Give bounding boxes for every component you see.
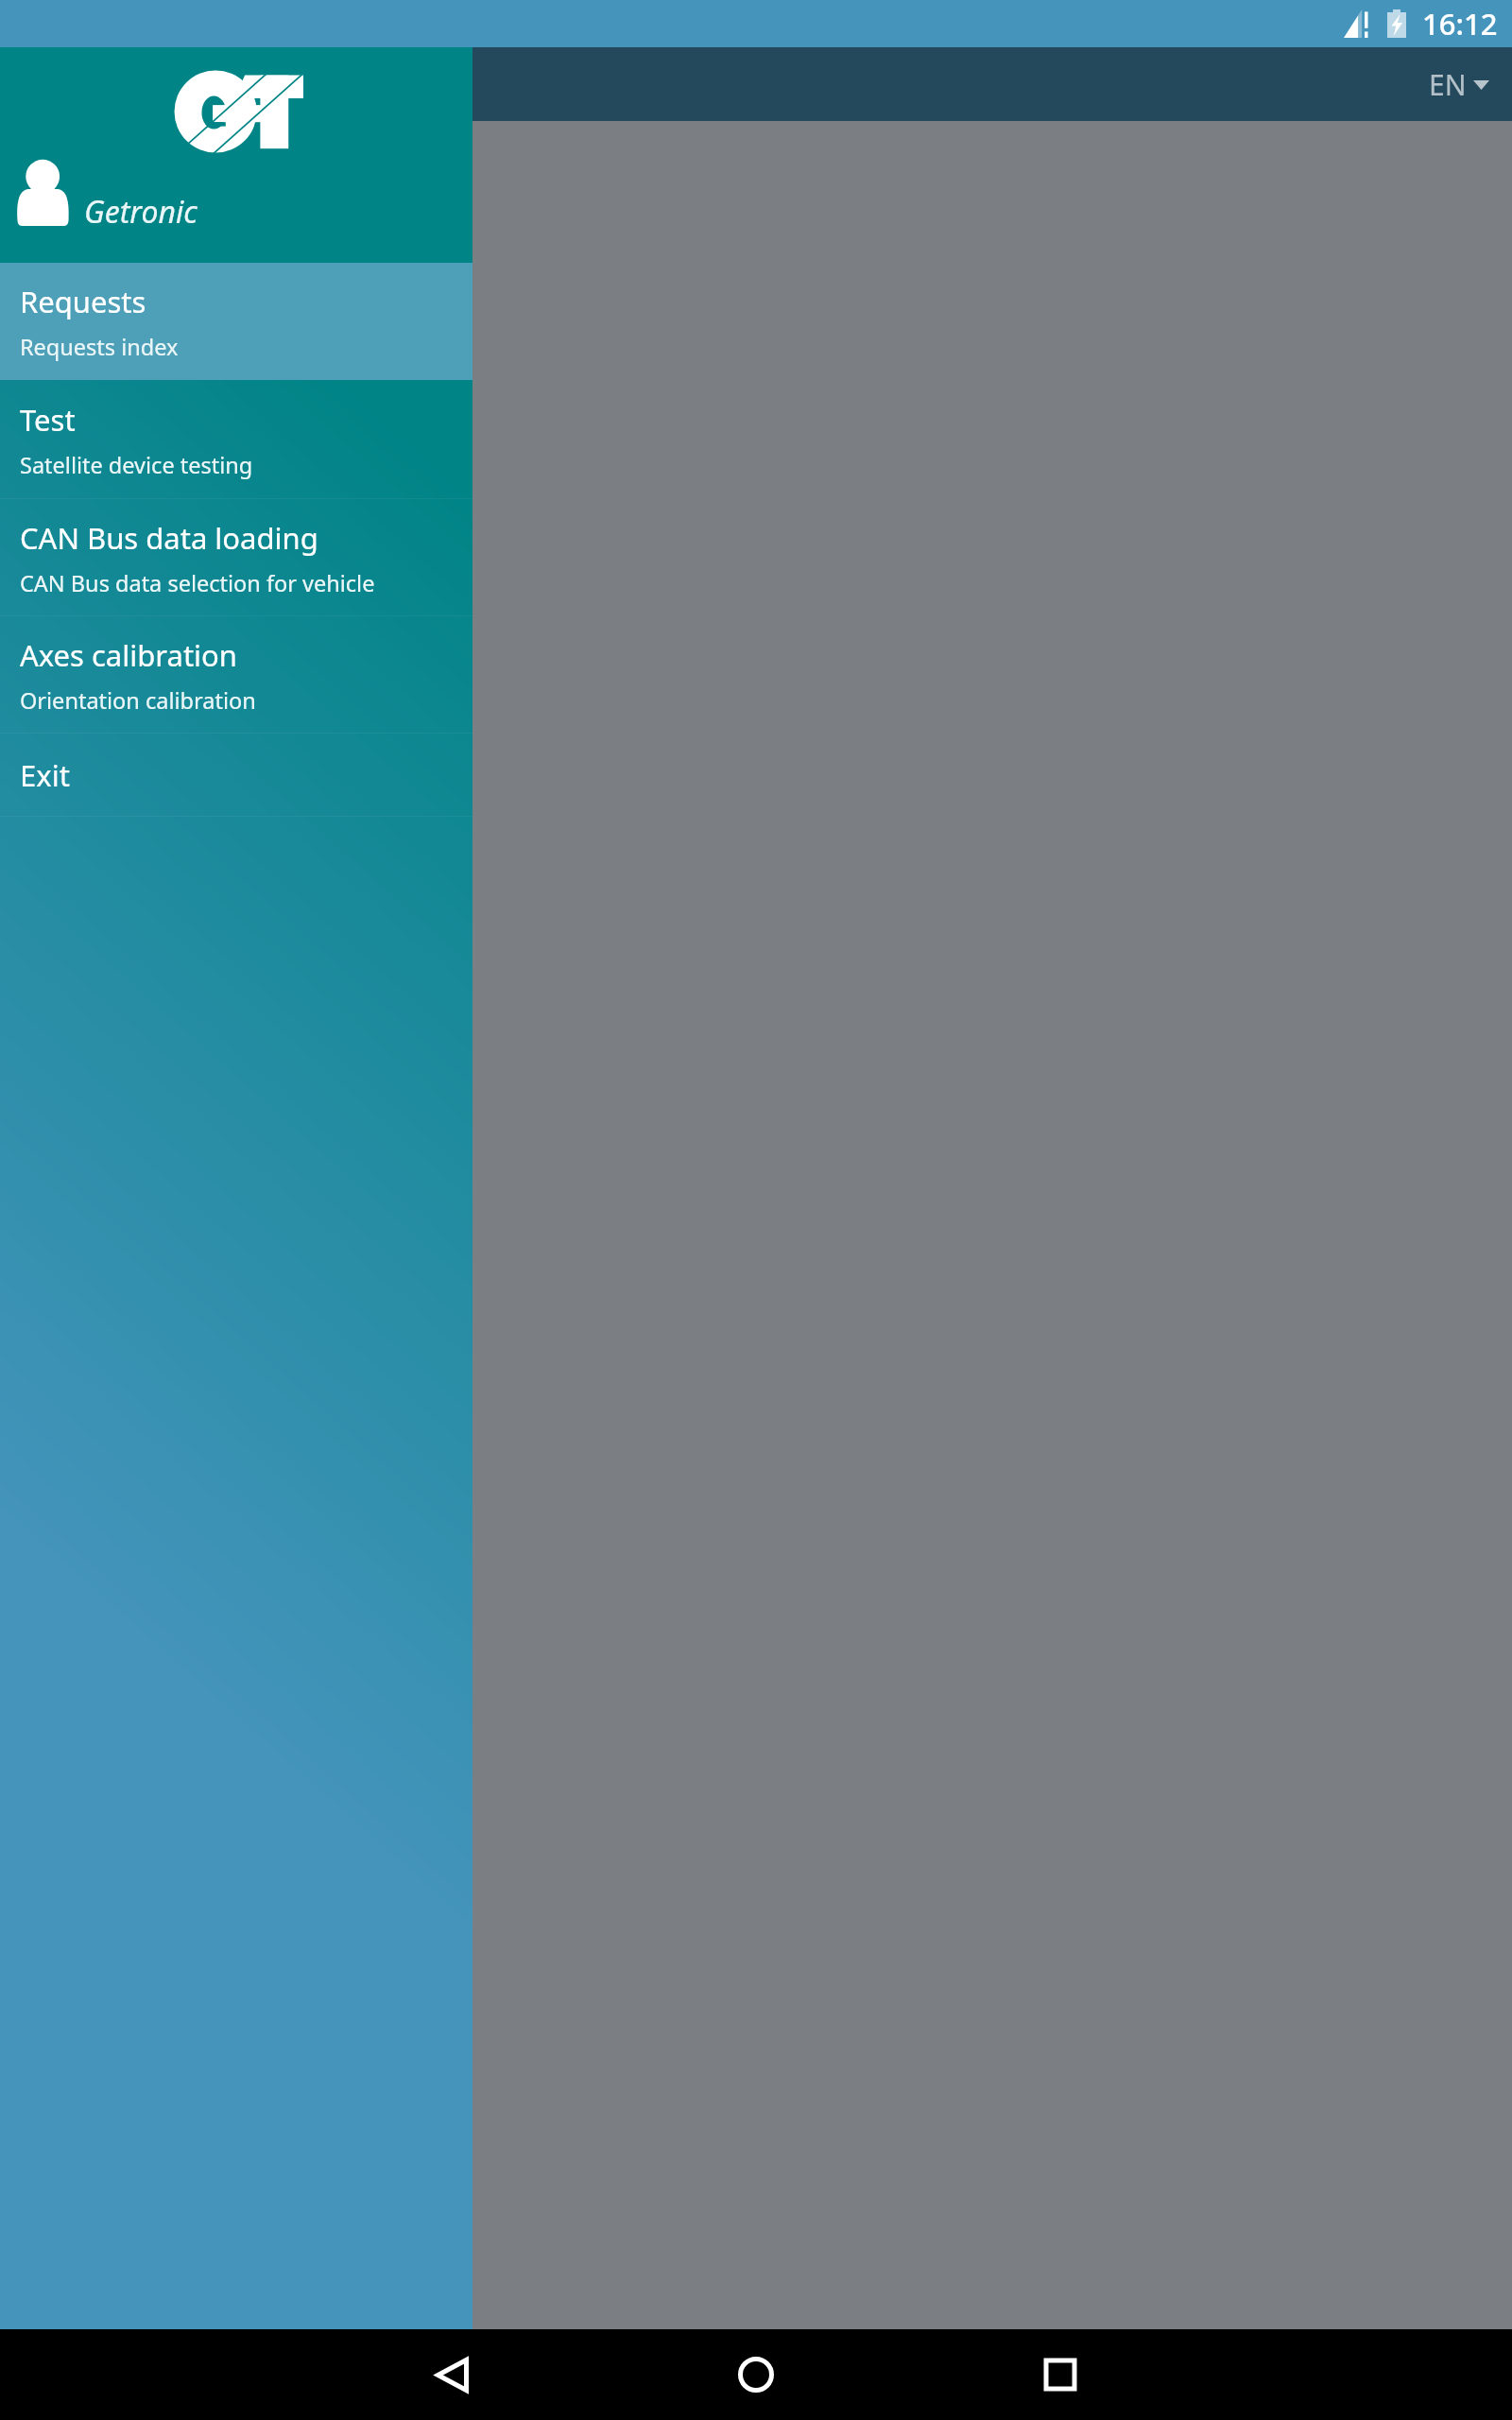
button[interactable]: Requests bbox=[0, 263, 472, 380]
staticText: 16:12 bbox=[1422, 4, 1498, 43]
staticText: Getronic bbox=[84, 191, 198, 233]
staticText: EN bbox=[1429, 65, 1467, 104]
button[interactable]: Recent apps bbox=[1015, 2329, 1106, 2420]
button[interactable]: Test bbox=[0, 380, 472, 499]
staticText: Requests bbox=[20, 282, 146, 321]
button[interactable]: EN bbox=[1408, 54, 1512, 115]
staticText: Orientation calibration bbox=[20, 685, 256, 716]
button[interactable]: Home bbox=[711, 2329, 801, 2420]
button[interactable]: CAN Bus data loading bbox=[0, 499, 472, 616]
button[interactable]: Back bbox=[406, 2329, 497, 2420]
staticText: Exit bbox=[20, 755, 70, 795]
button[interactable]: Exit bbox=[0, 734, 472, 817]
button[interactable]: Axes calibration bbox=[0, 616, 472, 734]
staticText: CAN Bus data selection for vehicle bbox=[20, 568, 375, 598]
staticText: Requests index bbox=[20, 332, 179, 362]
staticText: Test bbox=[20, 400, 76, 440]
staticText: Satellite device testing bbox=[20, 450, 253, 480]
staticText: CAN Bus data loading bbox=[20, 518, 318, 558]
staticText: Axes calibration bbox=[20, 635, 237, 675]
